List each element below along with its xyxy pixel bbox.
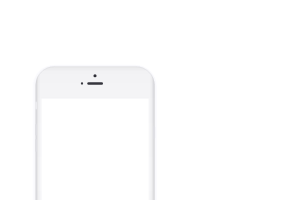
button[interactable]: Smartphone mockup: [0, 0, 300, 200]
